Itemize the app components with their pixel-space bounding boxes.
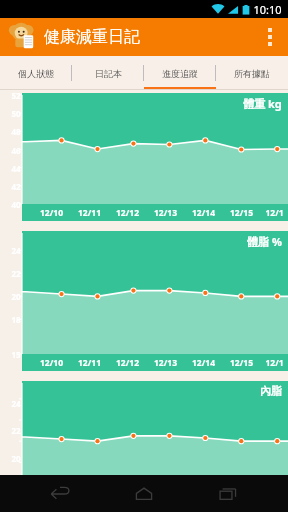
staticText: 50 bbox=[11, 108, 21, 119]
staticText: 20 bbox=[11, 453, 21, 464]
staticText: 48 bbox=[11, 126, 21, 137]
staticText: 12/14 bbox=[192, 207, 215, 219]
staticText: 12/15 bbox=[230, 207, 253, 219]
staticText: 進度追蹤 bbox=[162, 68, 198, 79]
button[interactable]: Back bbox=[36, 475, 84, 512]
staticText: 日記本 bbox=[95, 68, 122, 79]
staticText: 12/12 bbox=[116, 207, 139, 219]
staticText: 個人狀態 bbox=[18, 68, 54, 79]
staticText: 體脂 % bbox=[247, 234, 282, 249]
staticText: 健康減重日記 bbox=[44, 27, 140, 47]
button[interactable]: 進度追蹤 bbox=[144, 56, 216, 90]
button[interactable]: More options bbox=[252, 19, 288, 55]
staticText: 22 bbox=[11, 425, 21, 436]
staticText: 12/12 bbox=[116, 357, 139, 369]
staticText: 體重 kg bbox=[243, 96, 282, 111]
staticText: 12/10 bbox=[40, 357, 63, 369]
staticText: 46 bbox=[11, 145, 21, 156]
button[interactable]: 個人狀態 bbox=[0, 56, 72, 90]
staticText: 所有據點 bbox=[234, 68, 270, 79]
staticText: 12/11 bbox=[78, 207, 101, 219]
staticText: 12/11 bbox=[78, 357, 101, 369]
button[interactable]: Home bbox=[120, 475, 168, 512]
staticText: 12/13 bbox=[154, 207, 177, 219]
staticText: 12/10 bbox=[40, 207, 63, 219]
staticText: 12/14 bbox=[192, 357, 215, 369]
staticText: 20 bbox=[11, 291, 21, 302]
staticText: 12/15 bbox=[230, 357, 253, 369]
staticText: 內脂 bbox=[260, 384, 282, 398]
staticText: 40 bbox=[11, 199, 21, 210]
staticText: 52 bbox=[11, 90, 21, 101]
staticText: 12/1 bbox=[265, 207, 284, 219]
staticText: 42 bbox=[11, 181, 21, 192]
staticText: 12/1 bbox=[265, 357, 284, 369]
button[interactable]: 日記本 bbox=[72, 56, 144, 90]
staticText: 44 bbox=[11, 163, 21, 174]
staticText: 24 bbox=[11, 245, 21, 256]
staticText: 10:10 bbox=[253, 2, 282, 17]
button[interactable]: 所有據點 bbox=[216, 56, 288, 90]
staticText: 15 bbox=[11, 349, 21, 360]
staticText: 24 bbox=[11, 398, 21, 409]
button[interactable]: Recent apps bbox=[204, 475, 252, 512]
staticText: 22 bbox=[11, 268, 21, 279]
staticText: 12/13 bbox=[154, 357, 177, 369]
staticText: 18 bbox=[11, 314, 21, 325]
